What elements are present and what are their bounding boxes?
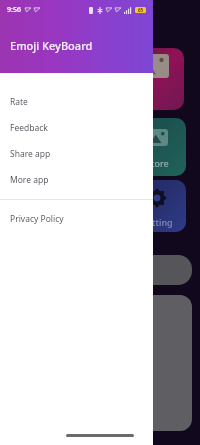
button[interactable]: photo board (120, 48, 184, 110)
staticText: Privacy Policy (10, 213, 64, 225)
staticText: More app (10, 174, 49, 186)
staticText: Share app (10, 148, 51, 160)
staticText: Feedback (10, 122, 48, 134)
button[interactable]: More app (0, 167, 153, 193)
staticText: 9:56 (7, 5, 21, 15)
button[interactable]: helpful and how (110, 295, 192, 431)
button[interactable] (110, 255, 192, 285)
staticText: Rate (10, 96, 28, 108)
staticText: Store (146, 157, 169, 169)
button[interactable]: Setting (128, 180, 186, 232)
staticText: Setting (142, 216, 173, 228)
staticText: Emoji KeyBoard (10, 38, 93, 53)
staticText: 65 (138, 7, 144, 13)
button[interactable]: Feedback (0, 115, 153, 141)
button[interactable]: Privacy Policy (0, 206, 153, 232)
button[interactable]: Rate (0, 89, 153, 115)
button[interactable]: Share app (0, 141, 153, 167)
button[interactable]: Store (128, 118, 186, 176)
